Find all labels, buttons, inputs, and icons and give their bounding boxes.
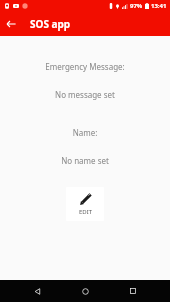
button[interactable]: Edit	[66, 187, 104, 221]
button[interactable]: Navigate up	[0, 13, 22, 35]
staticText: SOS app	[30, 17, 71, 31]
button[interactable]: Home	[74, 280, 96, 302]
button[interactable]: Recent apps	[122, 280, 144, 302]
staticText: Emergency Message:	[0, 61, 170, 72]
staticText: Name:	[0, 127, 170, 138]
staticText: EDIT	[79, 208, 93, 216]
staticText: No name set	[0, 155, 170, 166]
staticText: No message set	[0, 89, 170, 100]
staticText: 97%	[130, 2, 143, 10]
button[interactable]: Back	[26, 280, 48, 302]
staticText: 13:41	[151, 2, 167, 10]
